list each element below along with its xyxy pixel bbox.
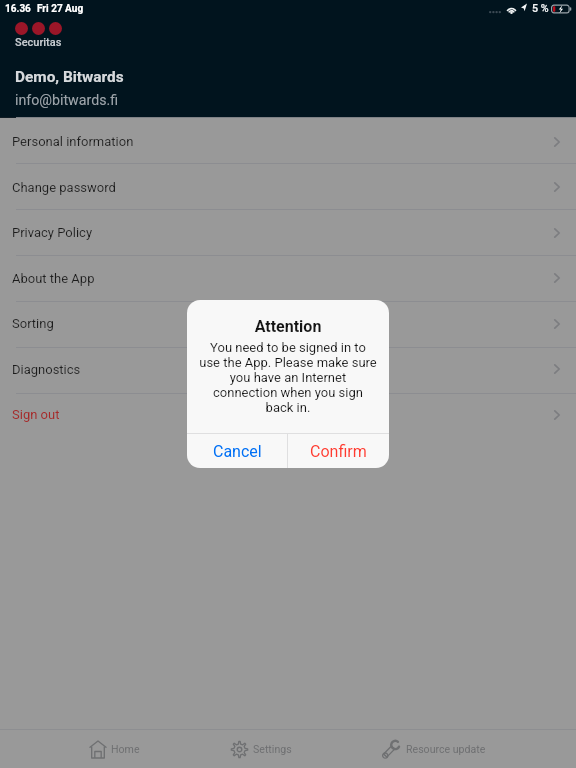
button[interactable]: Diagnostics: [0, 348, 576, 393]
staticText: About the App: [12, 271, 95, 286]
staticText: Home: [111, 743, 140, 755]
button[interactable]: Cancel: [187, 434, 287, 468]
staticText: Diagnostics: [12, 362, 81, 377]
button[interactable]: Resource update: [382, 730, 486, 768]
staticText: Confirm: [310, 442, 367, 461]
staticText: 5 %: [532, 2, 549, 15]
button[interactable]: Change password: [0, 164, 576, 209]
staticText: Cancel: [213, 442, 262, 461]
staticText: 16.36: [5, 3, 31, 15]
button[interactable]: Settings: [231, 730, 292, 768]
button[interactable]: Personal information: [0, 118, 576, 163]
other: Settings: [231, 741, 248, 758]
button[interactable]: Privacy Policy: [0, 210, 576, 255]
staticText: Resource update: [406, 743, 486, 755]
staticText: You need to be signed in to use the App.…: [199, 340, 377, 415]
staticText: Settings: [253, 743, 292, 755]
staticText: Demo, Bitwards: [15, 68, 124, 86]
button[interactable]: Home: [90, 730, 140, 768]
staticText: Securitas: [15, 36, 62, 49]
staticText: Change password: [12, 180, 116, 195]
button[interactable]: Sign out: [0, 394, 576, 439]
staticText: info@bitwards.fi: [15, 92, 119, 109]
button[interactable]: Sorting: [0, 302, 576, 347]
other: Resource update: [382, 740, 401, 759]
staticText: Personal information: [12, 134, 134, 149]
other: Home: [90, 741, 106, 758]
staticText: Sign out: [12, 407, 60, 422]
staticText: Privacy Policy: [12, 225, 93, 240]
button[interactable]: Confirm: [288, 434, 389, 468]
staticText: Sorting: [12, 316, 54, 331]
staticText: Attention: [187, 317, 389, 336]
staticText: Fri 27 Aug: [37, 3, 84, 15]
button[interactable]: About the App: [0, 256, 576, 301]
